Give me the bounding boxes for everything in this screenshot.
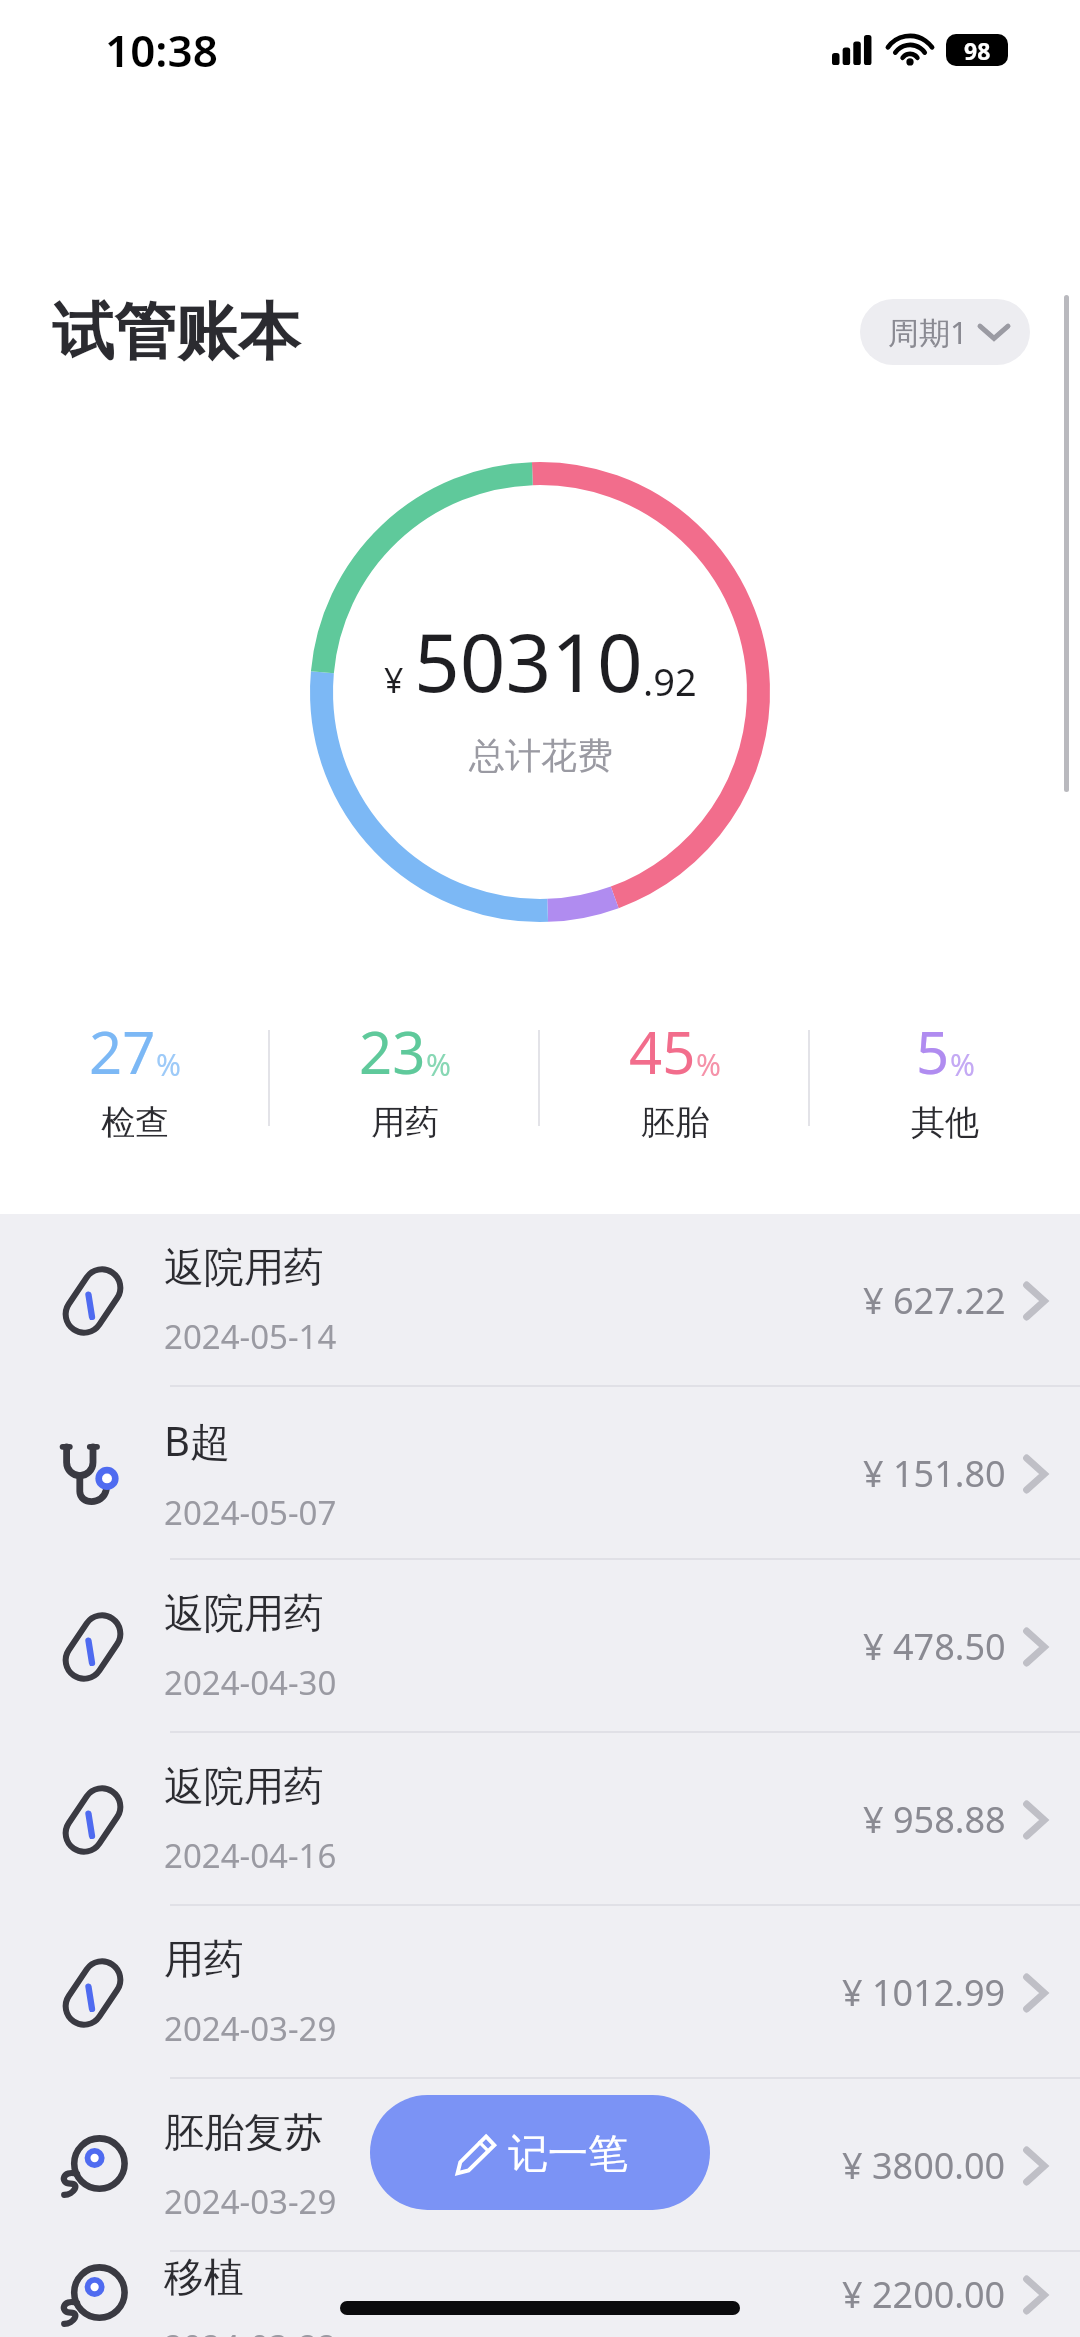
staticText: 27 — [89, 1012, 156, 1091]
staticText: B超 — [164, 1413, 230, 1468]
staticText: 用药 — [371, 1101, 439, 1144]
staticText: ¥ 1012.99 — [842, 1968, 1006, 2017]
staticText: 返院用药 — [164, 1761, 324, 1811]
staticText: 返院用药 — [164, 1242, 324, 1292]
staticText: % — [696, 1044, 721, 1085]
staticText: 2024-04-30 — [164, 1660, 337, 1705]
staticText: ¥ 151.80 — [863, 1449, 1006, 1498]
staticText: ¥ 3800.00 — [842, 2141, 1006, 2190]
staticText: 2024-03-29 — [164, 2179, 337, 2224]
staticText: ¥ 478.50 — [863, 1622, 1006, 1671]
staticText: 检查 — [101, 1101, 169, 1144]
staticText: ¥ 958.88 — [863, 1795, 1006, 1844]
staticText: 10:38 — [105, 20, 218, 80]
staticText: % — [156, 1044, 181, 1085]
staticText: 5 — [916, 1012, 950, 1091]
staticText: 总计花费 — [469, 733, 613, 778]
staticText: 返院用药 — [164, 1588, 324, 1638]
button[interactable]: B超 — [0, 1387, 1080, 1560]
staticText: 试管账本 — [52, 293, 300, 371]
staticText: % — [426, 1044, 451, 1085]
staticText: 2024-05-07 — [164, 1490, 337, 1535]
button[interactable]: 移植 — [0, 2252, 1080, 2337]
button[interactable]: 胚胎复苏 — [0, 2079, 1080, 2252]
staticText: ¥ 2200.00 — [842, 2270, 1006, 2319]
staticText: 用药 — [164, 1934, 244, 1984]
button[interactable]: 返院用药 — [0, 1214, 1080, 1387]
staticText: 其他 — [911, 1101, 979, 1144]
staticText: 记一笔 — [508, 2128, 628, 2178]
staticText: 胚胎复苏 — [164, 2107, 324, 2157]
staticText: % — [950, 1044, 975, 1085]
staticText: 2024-03-22 — [164, 2324, 337, 2337]
staticText: 50310 — [414, 606, 643, 715]
staticText: 移植 — [164, 2252, 244, 2302]
staticText: ¥ — [384, 657, 404, 703]
button[interactable]: 周期1 — [860, 299, 1030, 365]
staticText: 23 — [359, 1012, 426, 1091]
staticText: 2024-04-16 — [164, 1833, 337, 1878]
staticText: 2024-03-29 — [164, 2006, 337, 2051]
staticText: .92 — [643, 655, 697, 707]
staticText: 98 — [964, 35, 991, 66]
staticText: 胚胎 — [641, 1101, 709, 1144]
staticText: 2024-05-14 — [164, 1314, 337, 1359]
staticText: ¥ 627.22 — [863, 1276, 1006, 1325]
button[interactable]: 返院用药 — [0, 1733, 1080, 1906]
button[interactable]: 用药 — [0, 1906, 1080, 2079]
staticText: 周期1 — [888, 311, 968, 353]
button[interactable]: 返院用药 — [0, 1560, 1080, 1733]
staticText: 45 — [629, 1012, 696, 1091]
button[interactable]: 记一笔 — [370, 2095, 710, 2210]
